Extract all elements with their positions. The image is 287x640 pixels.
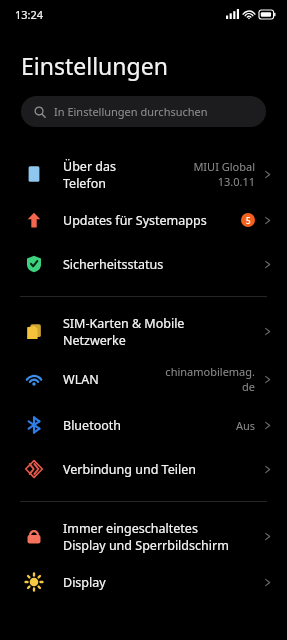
staticText: Bluetooth (63, 417, 122, 434)
other: Sicherheitsstatus (25, 255, 43, 273)
other: SIM-Karten (25, 322, 43, 340)
button[interactable]: Sicherheitsstatus (0, 242, 287, 286)
button[interactable]: Display (0, 560, 287, 604)
staticText: Einstellungen (21, 50, 168, 81)
staticText: WLAN (63, 371, 99, 388)
button[interactable]: Bluetooth (0, 403, 287, 447)
other: Bluetooth (25, 416, 43, 434)
button[interactable]: SIM-Karten (0, 307, 287, 355)
button[interactable]: Über das Telefon (0, 150, 287, 198)
staticText: chinamobilemag. de (165, 364, 255, 394)
other: Updates (25, 211, 43, 229)
staticText: 13:24 (15, 7, 44, 22)
staticText: 5 (246, 215, 251, 226)
other: Über das Telefon (25, 165, 43, 183)
button[interactable]: In Einstellungen durchsuchen (21, 96, 266, 127)
button[interactable]: WLAN (0, 355, 287, 403)
other: WLAN (25, 370, 43, 388)
staticText: In Einstellungen durchsuchen (54, 104, 208, 119)
staticText: Immer eingeschaltetes Display und Sperrb… (63, 520, 229, 553)
staticText: Sicherheitsstatus (63, 256, 164, 273)
other: Verbindung und Teilen (25, 460, 43, 478)
other: Sperrbildschirm (25, 527, 43, 545)
staticText: Updates für Systemapps (63, 212, 207, 229)
button[interactable]: Updates (0, 198, 287, 242)
staticText: SIM-Karten & Mobile Netzwerke (63, 315, 185, 348)
staticText: Display (63, 574, 106, 591)
staticText: Über das Telefon (63, 158, 116, 191)
staticText: Verbindung und Teilen (63, 461, 196, 478)
staticText: MIUI Global 13.0.11 (193, 159, 255, 189)
button[interactable]: Sperrbildschirm (0, 512, 287, 560)
staticText: Aus (235, 418, 255, 433)
other: Display (25, 573, 43, 591)
button[interactable]: Verbindung und Teilen (0, 447, 287, 491)
